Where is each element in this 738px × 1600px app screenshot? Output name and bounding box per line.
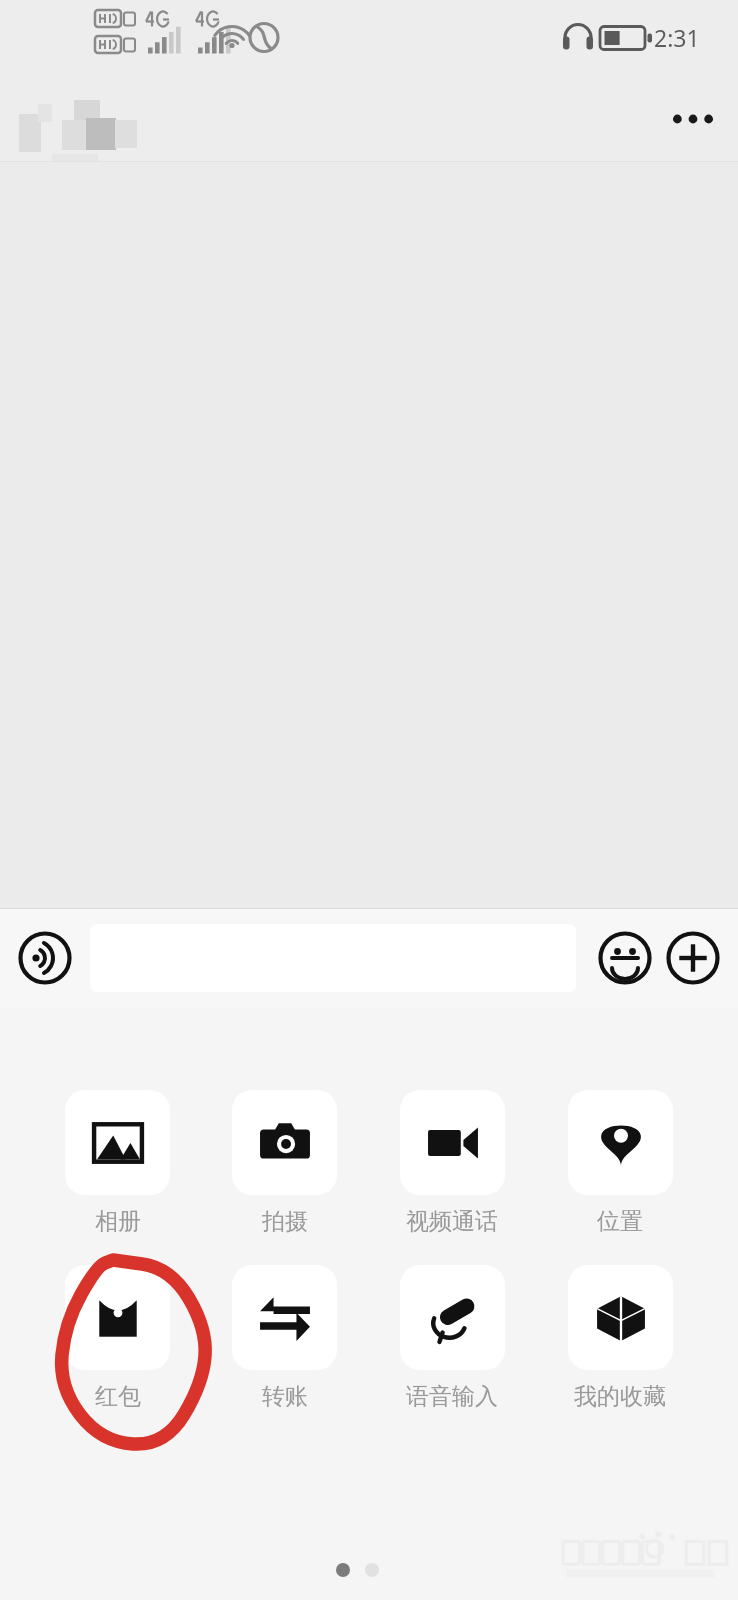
staticText: 2:31: [654, 22, 700, 53]
staticText: 红包: [95, 1382, 141, 1411]
button[interactable]: 位置: [536, 1090, 704, 1236]
staticText: 视频通话: [406, 1207, 498, 1236]
staticText: 语音输入: [406, 1382, 498, 1411]
button[interactable]: More attachments: [662, 927, 724, 989]
button[interactable]: More options: [662, 88, 724, 150]
button[interactable]: 转账: [201, 1265, 368, 1411]
button[interactable]: 视频通话: [368, 1090, 536, 1236]
button[interactable]: 拍摄: [201, 1090, 368, 1236]
staticText: 位置: [597, 1207, 643, 1236]
button[interactable]: 语音输入: [368, 1265, 536, 1411]
staticText: 我的收藏: [574, 1382, 666, 1411]
staticText: 相册: [95, 1207, 141, 1236]
staticText: 拍摄: [262, 1207, 308, 1236]
button[interactable]: Voice input: [14, 927, 76, 989]
button[interactable]: 我的收藏: [536, 1265, 704, 1411]
button[interactable]: 红包: [34, 1265, 201, 1411]
staticText: 转账: [262, 1382, 308, 1411]
button[interactable]: Emoji: [594, 927, 656, 989]
button[interactable]: 相册: [34, 1090, 201, 1236]
